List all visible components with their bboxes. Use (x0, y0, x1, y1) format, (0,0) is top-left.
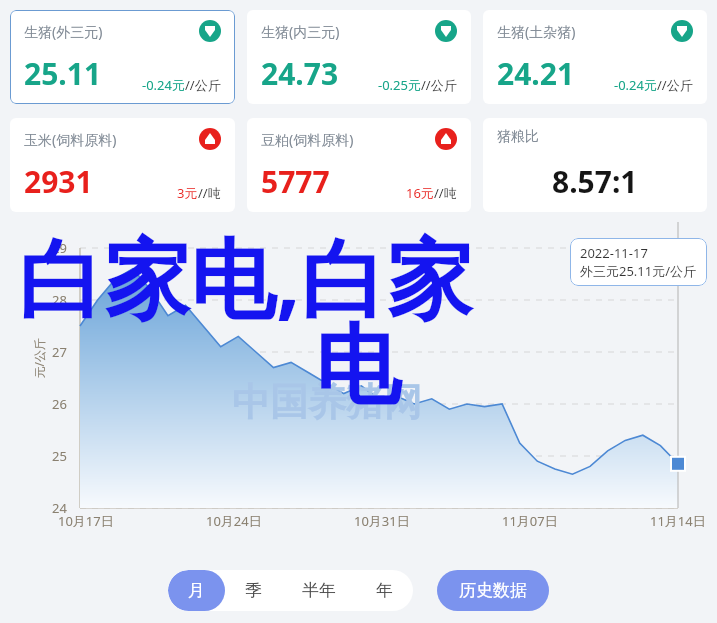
staticText: 外三元25.11元/公斤 (580, 262, 697, 280)
staticText: 猪粮比 (497, 128, 539, 146)
staticText: 10月17日 (58, 512, 114, 530)
button[interactable]: 猪粮比 (483, 118, 707, 212)
staticText: 10月24日 (206, 512, 262, 530)
staticText: 生猪(土杂猪) (497, 22, 576, 41)
staticText: 3元 (177, 184, 198, 202)
button[interactable]: 年 (356, 570, 413, 611)
button[interactable]: 生猪(外三元) (10, 10, 235, 104)
staticText: 25.11 (24, 53, 102, 94)
staticText: 28 (52, 291, 67, 309)
staticText: 电 (315, 312, 401, 420)
staticText: 月 (188, 580, 205, 601)
staticText: //公斤 (657, 76, 693, 94)
button[interactable]: 豆粕(饲料原料) (247, 118, 471, 212)
staticText: 玉米(饲料原料) (24, 130, 117, 149)
other: 价格上涨 (199, 128, 221, 150)
button[interactable]: 生猪(土杂猪) (483, 10, 707, 104)
button[interactable]: 玉米(饲料原料) (10, 118, 235, 212)
staticText: //公斤 (185, 76, 221, 94)
staticText: 豆粕(饲料原料) (261, 130, 354, 149)
staticText: //吨 (434, 184, 457, 202)
staticText: -0.25元 (378, 76, 421, 94)
staticText: 29 (52, 239, 67, 257)
staticText: 8.57:1 (552, 161, 638, 202)
staticText: 生猪(内三元) (261, 22, 340, 41)
other: 价格下跌 (671, 20, 693, 42)
staticText: 24.21 (497, 53, 575, 94)
button[interactable]: 半年 (282, 570, 356, 611)
staticText: 半年 (302, 580, 336, 601)
staticText: 25 (52, 447, 67, 465)
staticText: 11月14日 (650, 512, 706, 530)
button[interactable]: 季 (225, 570, 282, 611)
staticText: 26 (52, 395, 67, 413)
button[interactable]: 历史数据 (437, 570, 549, 611)
button[interactable]: 月 (168, 570, 225, 611)
staticText: 11月07日 (502, 512, 558, 530)
staticText: -0.24元 (614, 76, 657, 94)
staticText: 历史数据 (459, 580, 527, 601)
staticText: 生猪(外三元) (24, 22, 103, 41)
staticText: 16元 (406, 184, 434, 202)
staticText: 27 (52, 343, 67, 361)
staticText: //吨 (198, 184, 221, 202)
staticText: 24.73 (261, 53, 339, 94)
staticText: 2022-11-17 (580, 244, 648, 262)
button[interactable]: 生猪(内三元) (247, 10, 471, 104)
other: 价格上涨 (435, 128, 457, 150)
staticText: 中国养猪网 (232, 378, 422, 426)
staticText: //公斤 (421, 76, 457, 94)
staticText: 季 (245, 580, 262, 601)
staticText: 白家电,白家 (18, 218, 473, 335)
staticText: 5777 (261, 161, 330, 202)
staticText: -0.24元 (142, 76, 185, 94)
staticText: 年 (376, 580, 393, 601)
other: 价格下跌 (199, 20, 221, 42)
staticText: 10月31日 (354, 512, 410, 530)
staticText: 24 (52, 499, 67, 517)
staticText: 2931 (24, 161, 93, 202)
other: 价格下跌 (435, 20, 457, 42)
staticText: 元/公斤 (30, 337, 46, 378)
